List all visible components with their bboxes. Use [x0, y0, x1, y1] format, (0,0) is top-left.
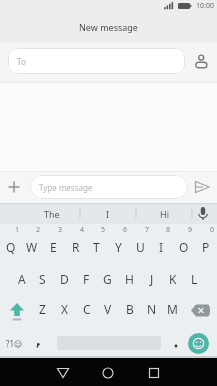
button[interactable]: Z — [32, 296, 53, 321]
button[interactable] — [5, 301, 29, 323]
button[interactable] — [190, 303, 212, 319]
button[interactable]: C — [76, 296, 97, 321]
staticText: Z — [39, 301, 46, 317]
staticText: U — [136, 239, 145, 255]
staticText: O — [179, 239, 189, 255]
staticText: X — [61, 301, 69, 317]
button[interactable]: B — [119, 296, 140, 321]
staticText: 6 — [123, 225, 128, 235]
staticText: L — [191, 271, 198, 287]
button[interactable]: Q — [0, 234, 21, 260]
staticText: C — [83, 301, 91, 317]
button[interactable]: A — [11, 266, 32, 291]
button[interactable]: I — [151, 234, 172, 260]
button[interactable]: G — [97, 266, 118, 291]
staticText: Q — [6, 239, 16, 255]
button[interactable]: T — [86, 234, 107, 260]
button[interactable] — [192, 50, 210, 72]
staticText: K — [169, 271, 177, 287]
staticText: 10:00 — [196, 1, 214, 11]
button[interactable]: I — [80, 203, 136, 224]
staticText: 1 — [15, 225, 20, 235]
staticText: 2 — [36, 225, 41, 235]
staticText: A — [18, 271, 26, 287]
staticText: 9 — [188, 225, 193, 235]
staticText: 7 — [145, 225, 150, 235]
button[interactable] — [194, 180, 211, 194]
staticText: M — [167, 301, 178, 317]
staticText: New message — [79, 21, 138, 33]
button[interactable]: M — [162, 296, 183, 321]
button[interactable]: X — [54, 296, 75, 321]
staticText: D — [60, 271, 69, 287]
staticText: W — [26, 239, 38, 255]
button[interactable] — [143, 364, 165, 382]
staticText: P — [202, 239, 210, 255]
button[interactable]: Y — [108, 234, 129, 260]
staticText: B — [126, 301, 134, 317]
button[interactable]: P — [195, 234, 216, 260]
button[interactable]: E — [43, 234, 64, 260]
staticText: R — [72, 239, 80, 255]
staticText: To — [17, 56, 26, 67]
staticText: I — [106, 208, 110, 220]
button[interactable]: L — [184, 266, 205, 291]
staticText: G — [103, 271, 112, 287]
button[interactable]: ?1☺ — [0, 334, 28, 352]
button[interactable]: Hi — [136, 203, 192, 224]
button[interactable]: V — [97, 296, 118, 321]
staticText: T — [93, 239, 100, 255]
button[interactable] — [6, 179, 22, 195]
button[interactable]: R — [65, 234, 86, 260]
staticText: 0 — [210, 225, 215, 235]
button[interactable] — [30, 334, 46, 352]
button[interactable] — [196, 206, 210, 222]
button[interactable]: D — [54, 266, 75, 291]
button[interactable]: To — [8, 48, 185, 74]
button[interactable]: H — [119, 266, 140, 291]
button[interactable]: Type message — [30, 175, 188, 199]
staticText: 5 — [101, 225, 106, 235]
button[interactable]: J — [141, 266, 162, 291]
staticText: E — [50, 239, 57, 255]
staticText: 3 — [58, 225, 63, 235]
button[interactable] — [97, 364, 119, 382]
button[interactable]: The — [24, 203, 80, 224]
button[interactable]: N — [141, 296, 162, 321]
staticText: S — [39, 271, 46, 287]
button[interactable] — [52, 364, 74, 382]
staticText: J — [150, 271, 154, 287]
button[interactable] — [168, 334, 184, 352]
staticText: H — [125, 271, 134, 287]
staticText: 8 — [166, 225, 171, 235]
staticText: The — [44, 208, 60, 220]
button[interactable]: W — [21, 234, 42, 260]
staticText: N — [147, 301, 157, 317]
staticText: F — [83, 271, 90, 287]
button[interactable]: K — [162, 266, 183, 291]
button[interactable]: F — [76, 266, 97, 291]
button[interactable]: S — [32, 266, 53, 291]
staticText: Type message — [39, 182, 93, 193]
button[interactable] — [188, 333, 209, 354]
staticText: V — [104, 301, 112, 317]
staticText: ?1☺ — [6, 338, 23, 349]
staticText: Y — [115, 239, 122, 255]
button[interactable]: U — [130, 234, 151, 260]
staticText: Hi — [160, 208, 169, 220]
staticText: 4 — [80, 225, 85, 235]
button[interactable]: O — [173, 234, 194, 260]
staticText: I — [159, 239, 164, 255]
